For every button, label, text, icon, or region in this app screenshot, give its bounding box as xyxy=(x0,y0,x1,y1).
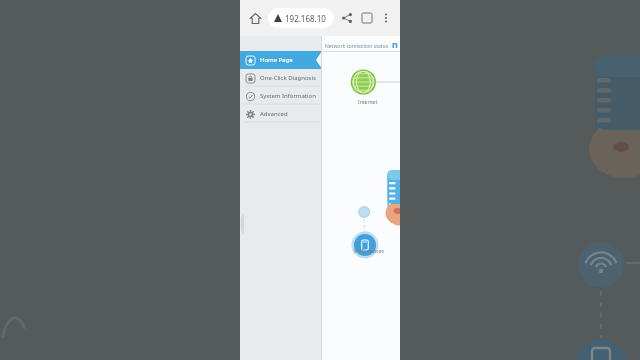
button[interactable]: One-Click Diagnosis xyxy=(240,69,322,87)
staticText: System Information xyxy=(260,92,316,100)
staticText: Wi-Fi devices xyxy=(354,248,384,255)
staticText: norm xyxy=(392,38,400,50)
button[interactable]: Home xyxy=(246,9,264,27)
staticText: One-Click Diagnosis xyxy=(260,74,316,82)
staticText: Internet xyxy=(358,99,378,106)
button[interactable]: Share xyxy=(339,10,355,26)
button[interactable]: Tabs xyxy=(359,10,375,26)
staticText: Network connection status xyxy=(325,43,389,50)
button[interactable]: 192.168.100.1/in xyxy=(268,8,334,28)
button[interactable]: Home Page xyxy=(240,51,322,69)
button[interactable]: System Information xyxy=(240,87,322,105)
button[interactable]: Advanced xyxy=(240,105,322,123)
button[interactable]: More options xyxy=(378,10,394,26)
staticText: Home Page xyxy=(260,56,293,64)
staticText: Advanced xyxy=(260,110,288,118)
staticText: 192.168.100.1/in xyxy=(285,13,330,24)
